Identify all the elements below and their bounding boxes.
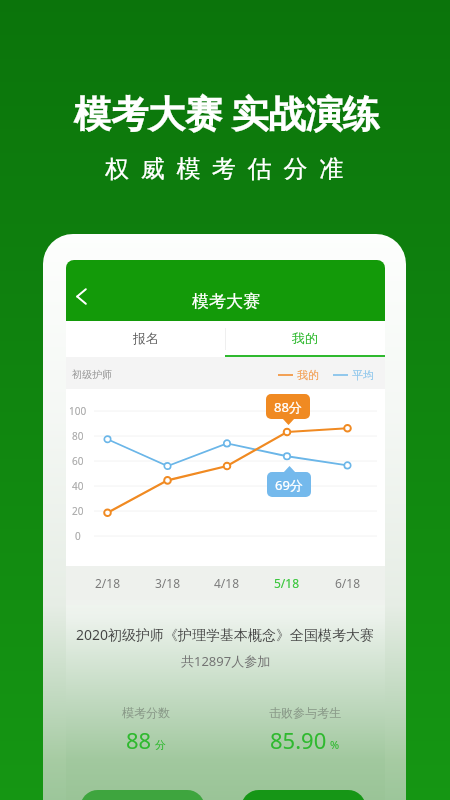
- staticText: 初级护师: [72, 368, 112, 381]
- staticText: 88分: [274, 398, 302, 416]
- staticText: 模考大赛 实战演练: [74, 87, 380, 138]
- button[interactable]: Back: [66, 282, 96, 310]
- staticText: 共12897人参加: [181, 652, 271, 670]
- staticText: 分: [155, 738, 166, 752]
- button[interactable]: 查看报告: [80, 790, 205, 800]
- staticText: 60: [72, 454, 84, 468]
- staticText: 100: [69, 404, 87, 418]
- button[interactable]: 我的: [225, 321, 385, 357]
- staticText: 69分: [275, 476, 303, 494]
- staticText: 6/18: [335, 575, 361, 591]
- staticText: 权威模考估分准: [105, 154, 355, 184]
- staticText: 2020初级护师《护理学基本概念》全国模考大赛: [76, 625, 375, 644]
- staticText: 我的: [292, 330, 318, 346]
- button[interactable]: 考后解析: [241, 790, 366, 800]
- staticText: 模考大赛: [192, 291, 260, 312]
- staticText: 平均: [352, 368, 374, 382]
- staticText: 4/18: [214, 575, 240, 591]
- staticText: %: [330, 737, 340, 752]
- staticText: 模考分数: [122, 705, 170, 720]
- staticText: 2/18: [95, 575, 121, 591]
- staticText: 击败参与考生: [269, 705, 341, 720]
- staticText: 80: [72, 429, 84, 443]
- staticText: 3/18: [155, 575, 181, 591]
- staticText: 88: [126, 725, 152, 755]
- staticText: 5/18: [274, 575, 300, 591]
- button[interactable]: 报名: [66, 321, 225, 357]
- staticText: 20: [72, 504, 84, 518]
- staticText: 85.90: [270, 725, 327, 755]
- staticText: 0: [75, 529, 81, 543]
- staticText: 报名: [133, 330, 159, 346]
- staticText: 我的: [297, 368, 319, 382]
- staticText: 40: [72, 479, 84, 493]
